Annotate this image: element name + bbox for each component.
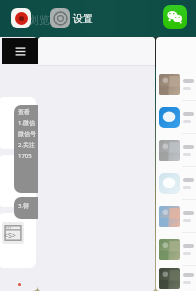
button[interactable]: 菜单 — [2, 38, 38, 64]
button[interactable]: 应用 — [11, 8, 31, 28]
staticText: 微信号 — [18, 130, 36, 138]
staticText: 设置 — [73, 12, 93, 25]
button[interactable]: 微信聊天 — [0, 37, 38, 291]
button[interactable] — [156, 167, 196, 199]
button[interactable]: 浏览器页面 — [38, 37, 155, 291]
staticText: 2.关注 — [18, 141, 36, 149]
staticText: 浏览 — [28, 13, 50, 27]
staticText: 1705 — [18, 152, 32, 160]
button[interactable] — [156, 101, 196, 133]
button[interactable] — [156, 134, 196, 166]
staticText: 1.微信 — [18, 119, 36, 127]
button[interactable]: 微信 — [163, 5, 187, 29]
staticText: <S> — [4, 231, 16, 241]
staticText: 3.得 — [18, 202, 30, 210]
button[interactable] — [156, 266, 196, 291]
button[interactable] — [156, 68, 196, 100]
button[interactable]: 设置 — [50, 8, 70, 28]
button[interactable]: 微信消息列表 — [156, 37, 196, 291]
staticText: 查看 — [18, 108, 30, 116]
button[interactable] — [156, 200, 196, 232]
button[interactable] — [156, 233, 196, 265]
